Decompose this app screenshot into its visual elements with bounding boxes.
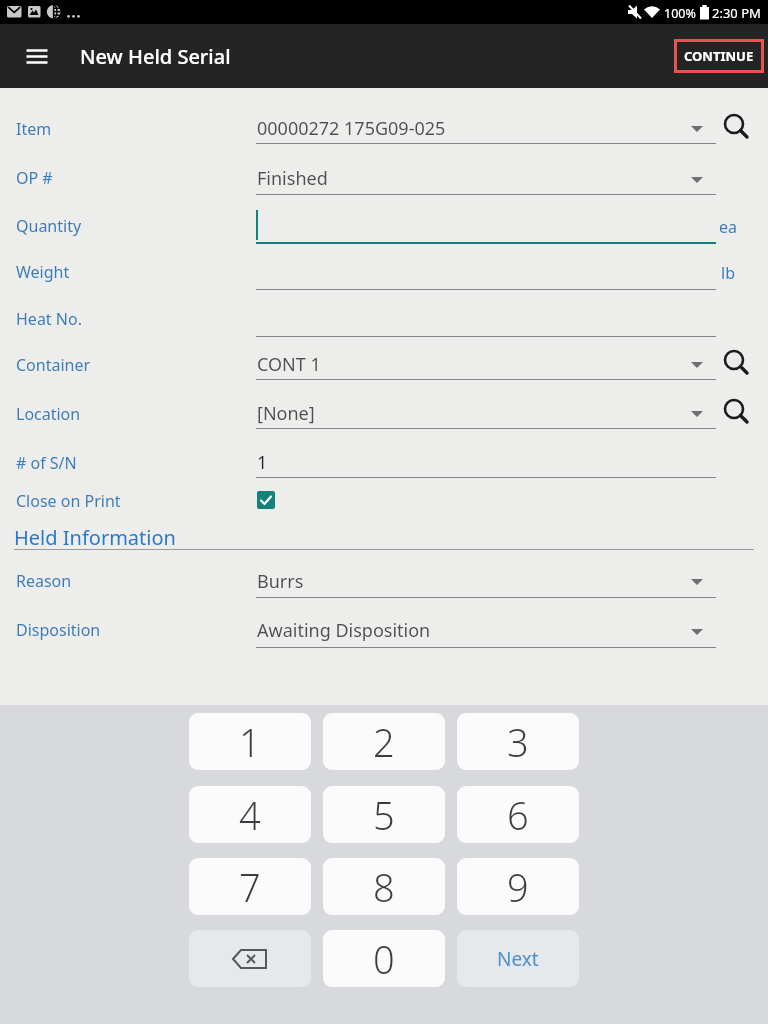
staticText: ea bbox=[719, 216, 738, 238]
staticText: Location bbox=[16, 403, 81, 425]
staticText: OP # bbox=[16, 167, 53, 189]
staticText: 6 bbox=[507, 789, 529, 841]
staticText: Held Information bbox=[14, 524, 176, 551]
staticText: 1 bbox=[257, 450, 268, 475]
staticText: 4 bbox=[239, 789, 261, 841]
staticText: Disposition bbox=[16, 619, 101, 641]
staticText: CONT 1 bbox=[257, 352, 321, 377]
staticText: New Held Serial bbox=[80, 43, 231, 70]
staticText: 9 bbox=[507, 861, 529, 913]
staticText: lb bbox=[721, 262, 735, 284]
staticText: # of S/N bbox=[16, 452, 77, 474]
staticText: 5 bbox=[373, 789, 395, 841]
staticText: 00000272 175G09-025 bbox=[257, 116, 446, 141]
staticText: 2 bbox=[373, 716, 395, 768]
staticText: CONTINUE bbox=[684, 47, 754, 65]
staticText: 100% bbox=[664, 5, 696, 22]
staticText: [None] bbox=[257, 401, 315, 426]
staticText: 3 bbox=[507, 716, 529, 768]
staticText: Container bbox=[16, 354, 91, 376]
staticText: Awaiting Disposition bbox=[257, 618, 431, 643]
staticText: Burrs bbox=[257, 569, 304, 594]
staticText: Heat No. bbox=[16, 308, 82, 330]
staticText: Finished bbox=[257, 166, 328, 191]
staticText: Weight bbox=[16, 261, 70, 283]
staticText: 1 bbox=[239, 716, 261, 768]
staticText: 8 bbox=[373, 861, 395, 913]
staticText: 0 bbox=[373, 933, 395, 985]
staticText: Reason bbox=[16, 570, 72, 592]
staticText: Close on Print bbox=[16, 490, 121, 512]
staticText: Item bbox=[16, 118, 52, 140]
staticText: 7 bbox=[239, 861, 261, 913]
staticText: Next bbox=[497, 946, 539, 972]
staticText: Quantity bbox=[16, 215, 82, 237]
staticText: 2:30 PM bbox=[712, 4, 761, 22]
